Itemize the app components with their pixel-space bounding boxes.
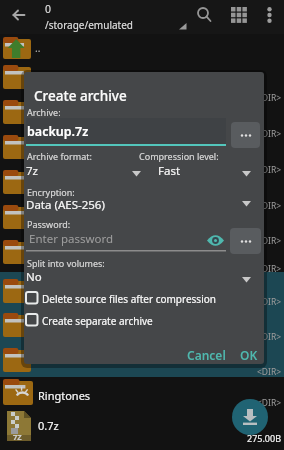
staticText: <DIR>	[257, 296, 282, 306]
button[interactable]	[230, 228, 261, 254]
button[interactable]: No	[26, 268, 260, 286]
button[interactable]	[26, 118, 226, 146]
button[interactable]	[26, 292, 38, 304]
staticText: Data (AES-256)	[26, 197, 105, 213]
button[interactable]: OK	[218, 338, 260, 362]
staticText: OK	[240, 347, 258, 363]
staticText: Archive:	[27, 106, 61, 118]
staticText: Fast	[158, 163, 181, 179]
button[interactable]	[0, 414, 284, 450]
button[interactable]	[24, 290, 264, 308]
button[interactable]	[232, 399, 268, 435]
staticText: <DIR>	[257, 200, 282, 210]
button[interactable]	[8, 5, 30, 25]
staticText: Compression level:	[139, 150, 219, 162]
button[interactable]: Enter password	[26, 228, 226, 252]
button[interactable]: /storage/emulated	[45, 17, 190, 32]
staticText: Password:	[27, 218, 71, 230]
button[interactable]: 7z	[26, 162, 144, 180]
staticText: <DIR>	[257, 331, 282, 341]
staticText: <DIR>	[257, 366, 282, 376]
staticText: 7z	[26, 163, 38, 179]
button[interactable]	[207, 234, 224, 247]
button[interactable]	[258, 2, 280, 28]
staticText: 0.7z	[38, 418, 59, 433]
staticText: Enter password	[29, 231, 114, 247]
button[interactable]	[26, 314, 38, 326]
staticText: <DIR>	[257, 164, 282, 174]
staticText: Delete source files after compression	[42, 292, 216, 306]
staticText: 0	[45, 2, 52, 16]
staticText: /storage/emulated	[45, 18, 133, 32]
staticText: Cancel	[187, 347, 226, 363]
staticText: 275.00B	[247, 432, 282, 444]
button[interactable]: Cancel	[164, 338, 226, 362]
staticText: <DIR>	[257, 263, 282, 273]
staticText: <DIR>	[257, 92, 282, 102]
staticText: ..	[35, 41, 41, 55]
button[interactable]: Fast	[154, 162, 260, 180]
staticText: Ringtones	[38, 388, 91, 403]
staticText: 7Z	[13, 432, 22, 442]
button[interactable]	[227, 2, 251, 28]
staticText: Archive format:	[27, 150, 92, 162]
staticText: Encryption:	[27, 186, 75, 198]
staticText: Create separate archive	[42, 314, 153, 328]
staticText: Split into volumes:	[27, 257, 105, 269]
button[interactable]: Data (AES-256)	[26, 196, 260, 214]
staticText: <DIR>	[257, 128, 282, 138]
staticText: <DIR>	[257, 235, 282, 245]
staticText: Create archive	[34, 87, 127, 105]
button[interactable]	[192, 2, 216, 28]
staticText: backup.7z	[27, 123, 89, 140]
button[interactable]	[0, 377, 284, 414]
button[interactable]	[231, 122, 260, 148]
staticText: No	[26, 269, 42, 285]
staticText: <DIR>	[257, 397, 282, 407]
